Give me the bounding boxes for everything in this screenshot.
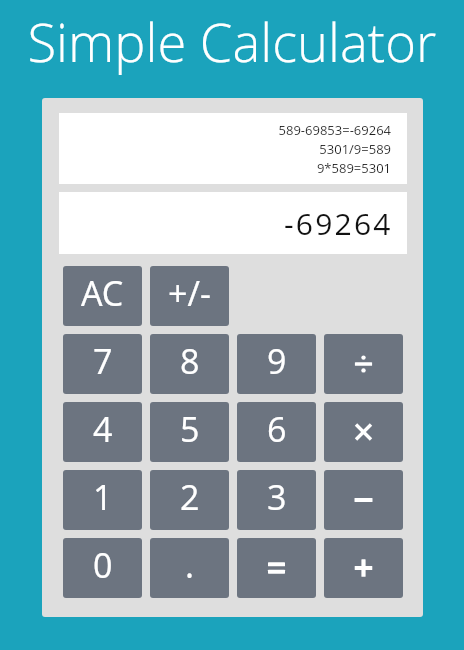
button[interactable]: 5	[150, 402, 229, 462]
button[interactable]: +/-	[150, 266, 229, 326]
staticText: 0	[93, 542, 113, 588]
button[interactable]: 0	[63, 538, 142, 598]
staticText: Simple Calculator	[0, 6, 464, 77]
button[interactable]: .	[150, 538, 229, 598]
button[interactable]: 6	[237, 402, 316, 462]
staticText: +/-	[168, 270, 211, 316]
staticText: 6	[267, 406, 287, 452]
button[interactable]: Subtract	[324, 470, 403, 530]
staticText: -69264	[284, 203, 393, 244]
staticText: 7	[93, 338, 113, 384]
button[interactable]: 9	[237, 334, 316, 394]
staticText: 4	[93, 406, 113, 452]
button[interactable]: 7	[63, 334, 142, 394]
button[interactable]: 2	[150, 470, 229, 530]
staticText: 3	[267, 474, 287, 520]
staticText: 9	[267, 338, 287, 384]
button[interactable]: AC	[63, 266, 142, 326]
staticText: 1	[93, 474, 113, 520]
staticText: 2	[180, 474, 200, 520]
staticText: 5	[180, 406, 200, 452]
button[interactable]: 3	[237, 470, 316, 530]
staticText: .	[185, 542, 195, 588]
staticText: 8	[180, 338, 200, 384]
staticText: 589-69853=-69264 5301/9=589 9*589=5301	[278, 121, 391, 177]
button[interactable]: Divide	[324, 334, 403, 394]
button[interactable]: 4	[63, 402, 142, 462]
button[interactable]: Multiply	[324, 402, 403, 462]
button[interactable]: 1	[63, 470, 142, 530]
button[interactable]: Add	[324, 538, 403, 598]
button[interactable]: Equals	[237, 538, 316, 598]
staticText: AC	[81, 270, 124, 316]
button[interactable]: 8	[150, 334, 229, 394]
